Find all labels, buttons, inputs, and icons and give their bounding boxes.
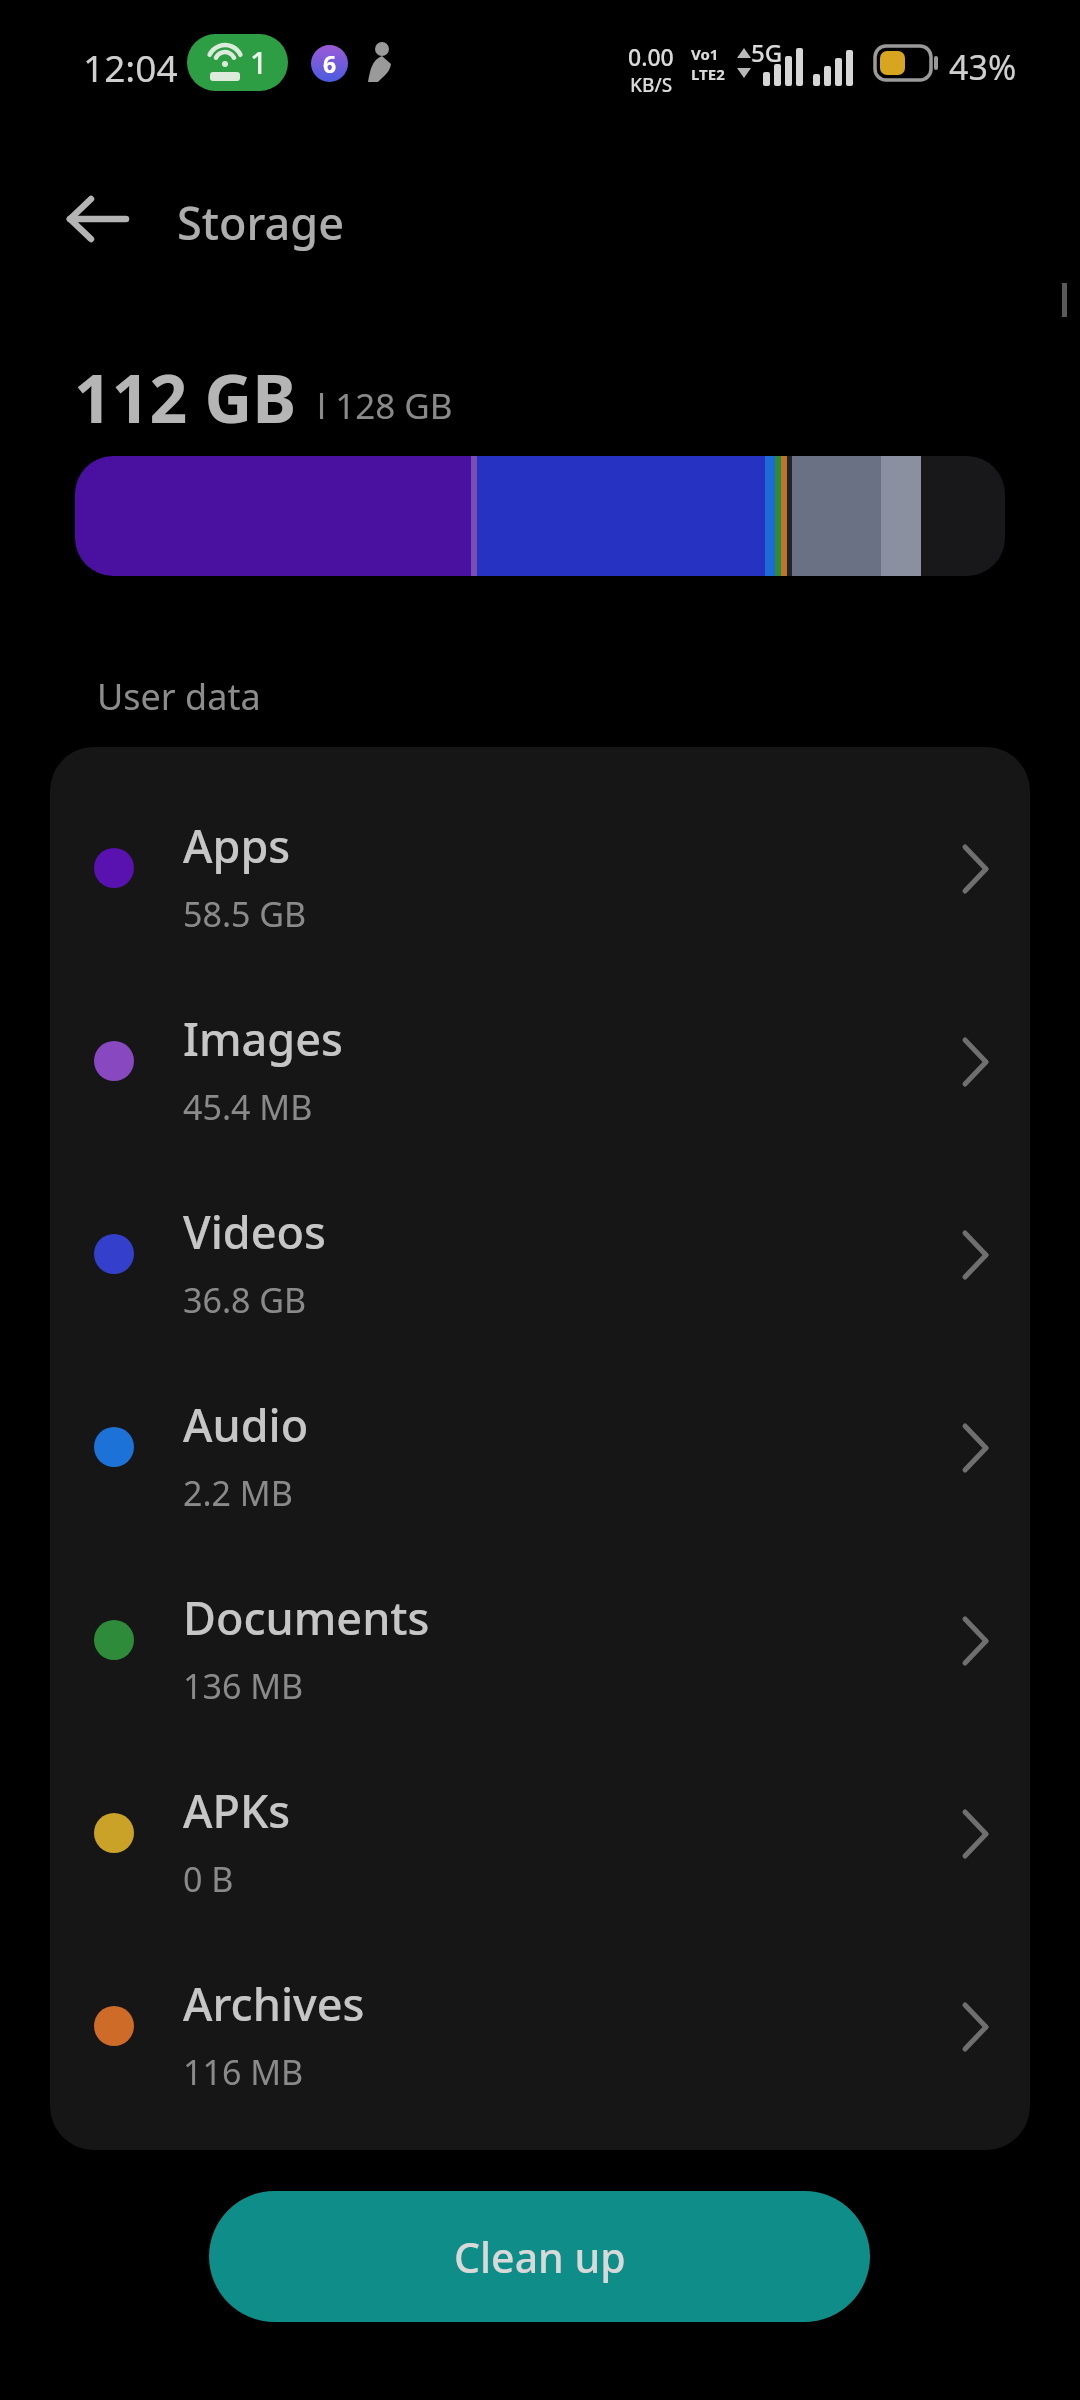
staticText: 2.2 MB <box>183 1470 293 1516</box>
staticText: Archives <box>183 1973 365 2034</box>
button[interactable] <box>58 179 138 259</box>
staticText: l 128 GB <box>317 382 453 430</box>
staticText: APKs <box>183 1780 291 1841</box>
staticText: Images <box>183 1008 343 1069</box>
button[interactable]: Audio <box>50 1350 1030 1543</box>
staticText: 0.00 <box>628 41 674 72</box>
staticText: Apps <box>183 815 291 876</box>
staticText: LTE2 <box>691 64 725 84</box>
button[interactable]: Videos <box>50 1157 1030 1350</box>
staticText: Videos <box>183 1201 326 1262</box>
staticText: Audio <box>183 1394 309 1455</box>
staticText: Documents <box>183 1587 430 1648</box>
staticText: KB/S <box>630 72 673 98</box>
button[interactable]: Archives <box>50 1929 1030 2122</box>
button[interactable]: APKs <box>50 1736 1030 1929</box>
staticText: 36.8 GB <box>183 1277 307 1323</box>
button[interactable]: Images <box>50 964 1030 1157</box>
button[interactable]: Apps <box>50 771 1030 964</box>
staticText: 43% <box>949 44 1017 90</box>
staticText: 0 B <box>183 1856 234 1902</box>
staticText: 12:04 <box>83 42 178 92</box>
staticText: 5G <box>751 36 783 69</box>
staticText: 112 GB <box>74 352 297 442</box>
staticText: Clean up <box>454 2229 626 2285</box>
staticText: 136 MB <box>183 1663 304 1709</box>
staticText: 58.5 GB <box>183 891 307 937</box>
staticText: User data <box>97 672 261 721</box>
staticText: Storage <box>177 192 345 253</box>
staticText: 1 <box>250 42 268 83</box>
staticText: 116 MB <box>183 2049 304 2095</box>
staticText: 45.4 MB <box>183 1084 313 1130</box>
button[interactable]: Clean up <box>209 2191 870 2322</box>
button[interactable]: Documents <box>50 1543 1030 1736</box>
staticText: Vo1 <box>691 44 719 64</box>
staticText: 6 <box>323 48 337 79</box>
